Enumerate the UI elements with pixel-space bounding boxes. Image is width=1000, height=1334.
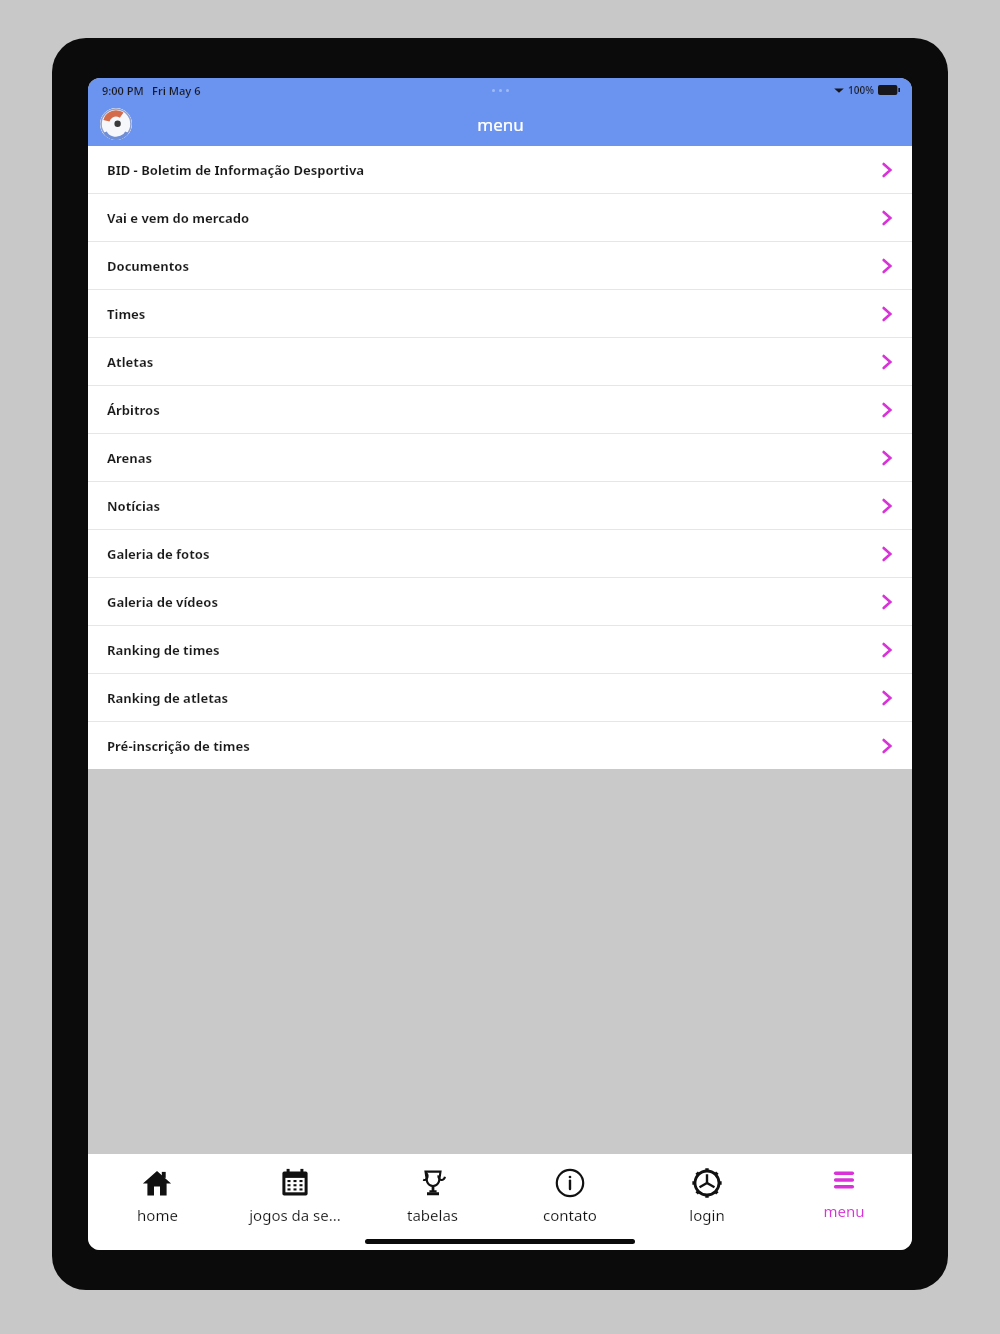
- staticText: Times: [107, 305, 881, 323]
- button[interactable]: Pré-inscrição de times: [88, 722, 912, 769]
- button[interactable]: Times: [88, 290, 912, 337]
- button[interactable]: Vai e vem do mercado: [88, 194, 912, 241]
- staticText: Árbitros: [107, 401, 881, 419]
- staticText: menu: [823, 1201, 865, 1221]
- button[interactable]: Ranking de atletas: [88, 674, 912, 721]
- staticText: tabelas: [407, 1205, 458, 1225]
- staticText: 100%: [848, 83, 874, 97]
- staticText: BID - Boletim de Informação Desportiva: [107, 161, 881, 179]
- button[interactable]: Galeria de fotos: [88, 530, 912, 577]
- button[interactable]: contato: [501, 1154, 638, 1232]
- button[interactable]: Árbitros: [88, 386, 912, 433]
- staticText: Ranking de atletas: [107, 689, 881, 707]
- staticText: Fri May 6: [152, 83, 201, 98]
- button[interactable]: Atletas: [88, 338, 912, 385]
- staticText: Atletas: [107, 353, 881, 371]
- button[interactable]: menu: [775, 1154, 912, 1232]
- button[interactable]: tabelas: [364, 1154, 501, 1232]
- staticText: Vai e vem do mercado: [107, 209, 881, 227]
- staticText: home: [137, 1205, 178, 1225]
- staticText: Galeria de fotos: [107, 545, 881, 563]
- button[interactable]: Notícias: [88, 482, 912, 529]
- staticText: menu: [477, 113, 524, 136]
- button[interactable]: Galeria de vídeos: [88, 578, 912, 625]
- staticText: Galeria de vídeos: [107, 593, 881, 611]
- staticText: 9:00 PM: [102, 83, 144, 98]
- button[interactable]: Documentos: [88, 242, 912, 289]
- button[interactable]: home: [88, 1154, 226, 1232]
- button[interactable]: Arenas: [88, 434, 912, 481]
- button[interactable]: jogos da se...: [226, 1154, 364, 1232]
- button[interactable]: BID - Boletim de Informação Desportiva: [88, 146, 912, 193]
- staticText: jogos da se...: [249, 1205, 341, 1225]
- staticText: Arenas: [107, 449, 881, 467]
- button[interactable]: Logo: [100, 108, 132, 140]
- staticText: contato: [543, 1205, 597, 1225]
- staticText: Documentos: [107, 257, 881, 275]
- button[interactable]: Ranking de times: [88, 626, 912, 673]
- staticText: Ranking de times: [107, 641, 881, 659]
- button[interactable]: login: [638, 1154, 775, 1232]
- staticText: Notícias: [107, 497, 881, 515]
- staticText: Pré-inscrição de times: [107, 737, 881, 755]
- staticText: login: [689, 1205, 725, 1225]
